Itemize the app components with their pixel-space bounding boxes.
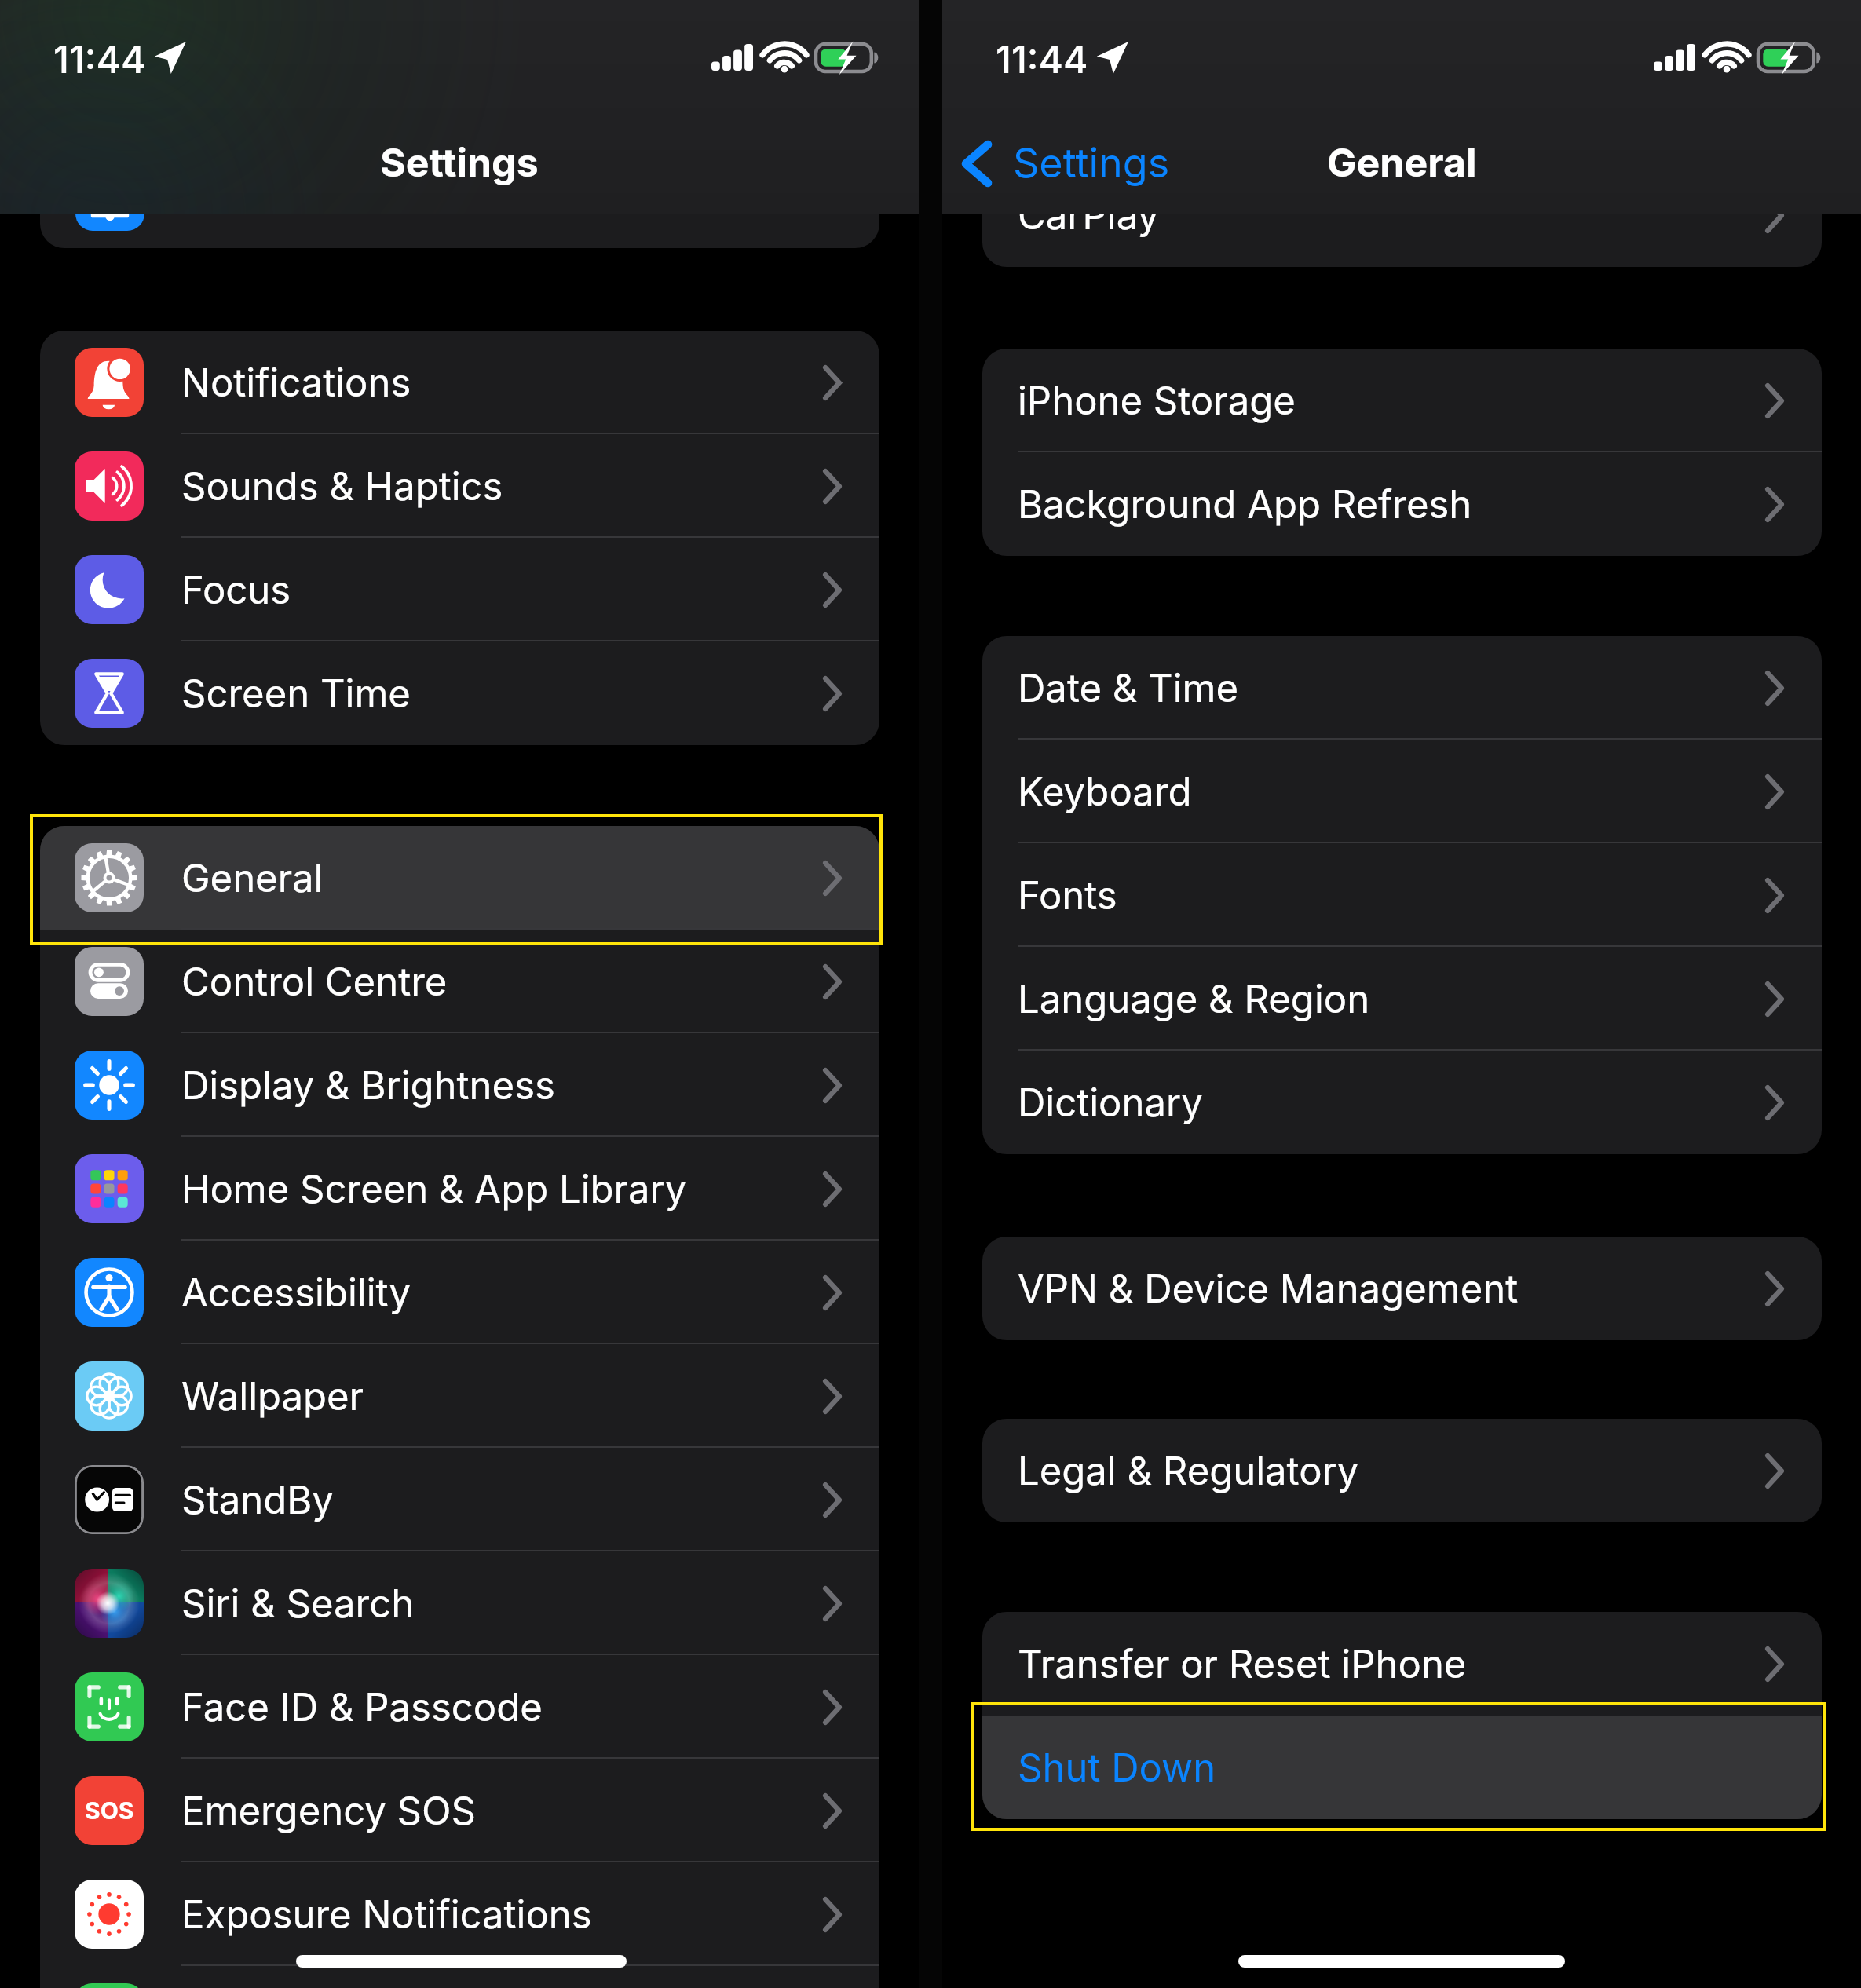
button[interactable]: SOS: [40, 1759, 879, 1862]
staticText: Screen Time: [181, 671, 411, 717]
staticText: Notifications: [181, 360, 411, 406]
button[interactable]: VPN & Device Management: [982, 1237, 1822, 1340]
staticText: Fonts: [1018, 872, 1117, 919]
staticText: General: [1327, 139, 1477, 186]
staticText: Transfer or Reset iPhone: [1018, 1641, 1467, 1687]
staticText: Exposure Notifications: [181, 1891, 592, 1938]
staticText: 11:44: [996, 36, 1088, 82]
staticText: Siri & Search: [181, 1581, 415, 1627]
button[interactable]: Exposure Notifications: [40, 1862, 879, 1966]
button[interactable]: Sounds & Haptics: [40, 434, 879, 538]
button[interactable]: Control Centre: [40, 930, 879, 1033]
staticText: VPN & Device Management: [1018, 1266, 1519, 1312]
button[interactable]: Keyboard: [982, 740, 1822, 843]
staticText: Control Centre: [181, 959, 448, 1005]
button[interactable]: Shut Down: [982, 1716, 1822, 1819]
staticText: Focus: [181, 567, 291, 613]
staticText: iPhone Storage: [1018, 378, 1296, 424]
staticText: Dictionary: [1018, 1080, 1203, 1126]
button[interactable]: Face ID & Passcode: [40, 1655, 879, 1759]
button[interactable]: Focus: [40, 538, 879, 641]
staticText: Background App Refresh: [1018, 481, 1472, 528]
staticText: SOS: [85, 1796, 134, 1825]
button[interactable]: Notifications: [40, 331, 879, 434]
button[interactable]: Display & Brightness: [40, 1033, 879, 1137]
button[interactable]: Transfer or Reset iPhone: [982, 1612, 1822, 1716]
button[interactable]: Home Screen & App Library: [40, 1137, 879, 1241]
button[interactable]: Legal & Regulatory: [982, 1419, 1822, 1522]
button[interactable]: Accessibility: [40, 1241, 879, 1344]
button[interactable]: General: [40, 826, 879, 930]
button[interactable]: Background App Refresh: [982, 452, 1822, 556]
button[interactable]: Dictionary: [982, 1051, 1822, 1154]
button[interactable]: Back to Settings: [952, 130, 1179, 198]
staticText: Settings: [380, 139, 539, 186]
staticText: Date & Time: [1018, 665, 1239, 711]
staticText: StandBy: [181, 1477, 334, 1523]
staticText: Wallpaper: [181, 1373, 364, 1420]
staticText: Sounds & Haptics: [181, 463, 503, 510]
button[interactable]: iPhone Storage: [982, 349, 1822, 452]
staticText: Face ID & Passcode: [181, 1684, 543, 1730]
staticText: CarPlay: [1018, 192, 1160, 239]
staticText: Shut Down: [1018, 1745, 1216, 1791]
button[interactable]: StandBy: [40, 1448, 879, 1551]
staticText: Display & Brightness: [181, 1062, 555, 1109]
button[interactable]: Fonts: [982, 843, 1822, 947]
button[interactable]: CarPlay: [982, 163, 1822, 267]
staticText: Language & Region: [1018, 976, 1370, 1022]
button[interactable]: Language & Region: [982, 947, 1822, 1051]
button[interactable]: Screen Time: [40, 641, 879, 745]
button[interactable]: Wallpaper: [40, 1344, 879, 1448]
staticText: Accessibility: [181, 1270, 411, 1316]
staticText: Settings: [1013, 138, 1170, 188]
staticText: Emergency SOS: [181, 1788, 476, 1834]
button[interactable]: Battery: [40, 1966, 879, 1988]
staticText: 11:44: [53, 36, 146, 82]
staticText: Home Screen & App Library: [181, 1166, 687, 1212]
staticText: Legal & Regulatory: [1018, 1448, 1359, 1494]
staticText: Keyboard: [1018, 769, 1192, 815]
staticText: General: [181, 855, 324, 901]
button[interactable]: Date & Time: [982, 636, 1822, 740]
button[interactable]: Siri & Search: [40, 1551, 879, 1655]
